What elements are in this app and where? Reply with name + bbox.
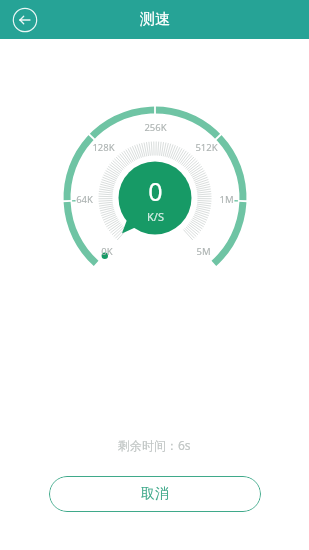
staticText: 取消 [141,485,169,503]
staticText: 剩余时间：6s [118,437,191,453]
staticText: 256K [144,121,167,134]
staticText: 5M [196,245,211,258]
staticText: 0 [148,174,163,208]
staticText: K/S [147,209,164,224]
button[interactable]: 取消 [49,476,261,512]
staticText: 1M [219,193,234,206]
button[interactable]: Back [12,7,38,33]
staticText: 512K [195,141,218,154]
staticText: 测速 [140,10,170,29]
staticText: 128K [92,141,115,154]
staticText: 0K [101,245,113,258]
staticText: 64K [76,193,93,206]
